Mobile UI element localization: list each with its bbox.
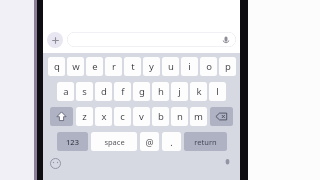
staticText: j — [178, 85, 181, 98]
staticText: t — [131, 60, 135, 73]
button[interactable]: Add attachment — [47, 32, 63, 48]
button[interactable]: j — [171, 82, 188, 101]
button[interactable]: z — [76, 107, 93, 126]
staticText: p — [225, 60, 231, 73]
button[interactable]: k — [190, 82, 207, 101]
button[interactable]: u — [162, 57, 179, 76]
staticText: w — [72, 60, 80, 73]
button[interactable]: . — [162, 132, 181, 151]
button[interactable]: Dictate — [221, 157, 234, 170]
staticText: q — [54, 60, 60, 73]
button[interactable]: w — [67, 57, 84, 76]
button[interactable]: v — [133, 107, 150, 126]
button[interactable]: d — [95, 82, 112, 101]
button[interactable]: return — [184, 132, 227, 151]
staticText: s — [82, 85, 87, 98]
staticText: space — [104, 137, 125, 147]
button[interactable]: t — [124, 57, 141, 76]
staticText: return — [194, 137, 217, 147]
staticText: m — [194, 110, 203, 123]
button[interactable]: n — [171, 107, 188, 126]
button[interactable]: Voice input — [67, 32, 236, 47]
staticText: y — [149, 60, 154, 73]
button[interactable]: Emoji — [49, 157, 62, 170]
button[interactable]: c — [114, 107, 131, 126]
button[interactable]: x — [95, 107, 112, 126]
staticText: v — [139, 110, 144, 123]
staticText: k — [196, 85, 202, 98]
staticText: a — [63, 85, 69, 98]
staticText: 123 — [66, 137, 79, 147]
button[interactable]: @ — [140, 132, 159, 151]
button[interactable]: h — [152, 82, 169, 101]
button[interactable]: m — [190, 107, 207, 126]
staticText: n — [177, 110, 183, 123]
button[interactable]: q — [48, 57, 65, 76]
staticText: l — [216, 85, 219, 98]
staticText: o — [206, 60, 212, 73]
button[interactable]: o — [200, 57, 217, 76]
staticText: . — [170, 136, 173, 148]
staticText: e — [92, 60, 98, 73]
staticText: c — [120, 110, 125, 123]
staticText: d — [101, 85, 107, 98]
button[interactable]: s — [76, 82, 93, 101]
button[interactable]: Voice input — [221, 35, 231, 45]
button[interactable]: e — [86, 57, 103, 76]
staticText: x — [101, 110, 107, 123]
staticText: r — [112, 60, 116, 73]
button[interactable]: f — [114, 82, 131, 101]
staticText: u — [168, 60, 174, 73]
staticText: f — [121, 85, 125, 98]
staticText: @ — [145, 136, 154, 148]
button[interactable]: l — [209, 82, 226, 101]
button[interactable]: Shift — [50, 107, 73, 126]
button[interactable]: Backspace — [210, 107, 233, 126]
button[interactable]: b — [152, 107, 169, 126]
staticText: z — [82, 110, 87, 123]
button[interactable]: space — [91, 132, 137, 151]
button[interactable]: a — [57, 82, 74, 101]
button[interactable]: p — [219, 57, 236, 76]
button[interactable]: i — [181, 57, 198, 76]
staticText: h — [158, 85, 164, 98]
button[interactable]: r — [105, 57, 122, 76]
button[interactable]: y — [143, 57, 160, 76]
staticText: b — [158, 110, 164, 123]
button[interactable]: g — [133, 82, 150, 101]
button[interactable]: 123 — [57, 132, 88, 151]
staticText: i — [188, 60, 191, 73]
staticText: g — [139, 85, 145, 98]
